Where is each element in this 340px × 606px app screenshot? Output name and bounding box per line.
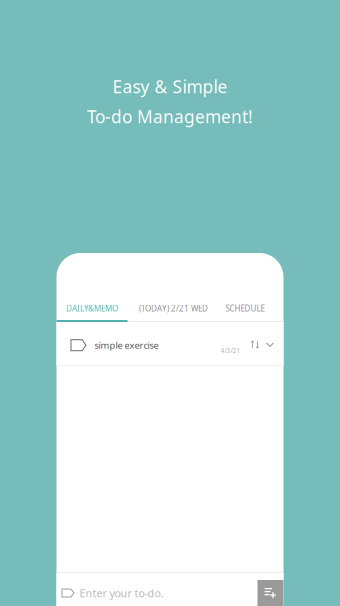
button[interactable]: DAILY&MEMO bbox=[56, 298, 127, 322]
staticText: DAILY&MEMO bbox=[66, 303, 118, 314]
button[interactable]: SCHEDULE bbox=[219, 298, 270, 322]
staticText: Easy & Simple bbox=[112, 75, 227, 98]
staticText: To-do Management! bbox=[87, 105, 253, 128]
staticText: simple exercise bbox=[94, 339, 158, 351]
button[interactable]: (TODAY) 2/21 WED bbox=[127, 298, 219, 322]
staticText: (TODAY) 2/21 WED bbox=[139, 303, 208, 314]
staticText: Enter your to-do. bbox=[79, 586, 163, 600]
button[interactable]: Add to-do bbox=[257, 580, 283, 606]
button[interactable]: simple exercise bbox=[56, 322, 283, 365]
staticText: SCHEDULE bbox=[225, 303, 264, 314]
staticText: 4/3/21 bbox=[220, 346, 240, 355]
